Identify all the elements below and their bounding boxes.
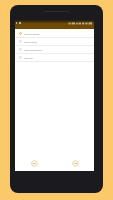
staticText: App thumbnails — [24, 48, 42, 51]
button[interactable]: Last file — [15, 53, 94, 61]
staticText: Story mode — [24, 40, 37, 43]
button[interactable]: Normal mode — [15, 29, 94, 37]
button[interactable]: Previous — [31, 160, 38, 167]
staticText: Normal mode — [24, 32, 40, 35]
button[interactable]: App thumbnails — [15, 45, 94, 53]
button[interactable]: Next — [72, 160, 79, 167]
button[interactable]: Story mode — [15, 37, 94, 45]
staticText: Last file — [24, 56, 33, 59]
